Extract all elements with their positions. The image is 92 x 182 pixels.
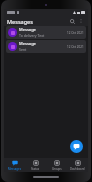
staticText: To delivery Text [19,33,45,38]
staticText: Sent [19,47,27,52]
button[interactable]: Status [25,159,46,172]
staticText: 12 Oct 2021 [67,31,84,35]
button[interactable]: Groups [46,159,67,172]
button[interactable]: Search [68,17,76,25]
staticText: 12 Oct 2021 [67,45,84,49]
staticText: Status [31,167,40,171]
button[interactable]: More options [77,17,85,25]
staticText: Dashboard [70,167,85,171]
button[interactable]: Start chat [70,140,83,153]
button[interactable]: Dashboard [67,159,88,172]
staticText: Message [19,27,36,32]
staticText: Messages [7,18,33,25]
button[interactable]: Message [6,40,86,53]
staticText: Groups [52,167,62,171]
button[interactable]: Message [6,26,86,39]
staticText: Messages [8,167,21,171]
staticText: Message [19,41,36,46]
button[interactable]: Messages [4,159,25,172]
